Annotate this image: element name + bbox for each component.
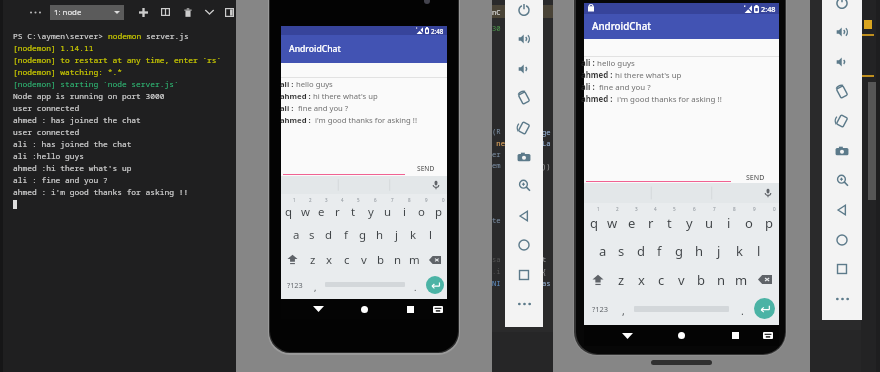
button[interactable]: Rotate left xyxy=(822,77,862,107)
button[interactable]: 2 xyxy=(603,207,622,236)
button[interactable]: Shift xyxy=(584,265,611,294)
button[interactable]: g xyxy=(354,222,371,247)
button[interactable]: Back xyxy=(822,195,862,225)
button[interactable]: b xyxy=(691,265,711,294)
button[interactable]: Take screenshot xyxy=(505,142,543,171)
button[interactable]: . xyxy=(409,272,422,297)
button[interactable]: f xyxy=(337,222,354,247)
button[interactable]: Enter xyxy=(426,276,444,294)
button[interactable]: Take screenshot xyxy=(822,136,862,166)
button[interactable]: Toggle side panel xyxy=(223,4,236,20)
button[interactable]: Backspace xyxy=(751,265,779,294)
button[interactable]: Volume down xyxy=(505,54,543,83)
button[interactable]: Volume down xyxy=(822,47,862,77)
button[interactable]: 3 xyxy=(622,207,641,236)
button[interactable]: Rotate right xyxy=(505,113,543,142)
button[interactable]: d xyxy=(320,222,337,247)
button[interactable]: m xyxy=(406,247,423,272)
button[interactable]: v xyxy=(355,247,372,272)
button[interactable]: f xyxy=(650,236,669,265)
button[interactable]: m xyxy=(731,265,751,294)
button[interactable]: SEND xyxy=(414,162,438,175)
button[interactable]: Backspace xyxy=(423,247,447,272)
button[interactable]: 1 xyxy=(281,198,297,223)
button[interactable]: Switch keyboard xyxy=(757,325,779,346)
button[interactable]: ?123 xyxy=(584,294,616,323)
button[interactable]: s xyxy=(304,222,320,247)
button[interactable]: AndroidChat xyxy=(281,35,447,63)
button[interactable]: Split terminal xyxy=(157,4,174,20)
button[interactable]: 8 xyxy=(719,207,739,236)
button[interactable]: Power xyxy=(505,0,543,24)
button[interactable]: Home xyxy=(505,230,543,259)
button[interactable]: Power xyxy=(822,0,862,18)
button[interactable]: Home xyxy=(822,225,862,255)
button[interactable]: 7 xyxy=(699,207,719,236)
button[interactable]: Rotate left xyxy=(505,83,543,112)
button[interactable]: Kill terminal xyxy=(179,4,196,20)
button[interactable]: ?123 xyxy=(281,272,309,297)
button[interactable]: g xyxy=(669,236,689,265)
button[interactable]: SEND xyxy=(743,171,768,183)
button[interactable]: 2 xyxy=(297,198,313,223)
button[interactable]: Back xyxy=(505,201,543,230)
button[interactable]: l xyxy=(749,236,769,265)
button[interactable]: More xyxy=(822,284,862,314)
button[interactable]: , xyxy=(616,294,631,323)
button[interactable]: Overview xyxy=(505,260,543,289)
button[interactable]: 8 xyxy=(396,198,413,223)
button[interactable]: l xyxy=(422,222,439,247)
button[interactable]: Voice input xyxy=(430,179,442,191)
button[interactable]: Enter xyxy=(754,298,775,319)
button[interactable]: Overview xyxy=(822,254,862,284)
button[interactable]: Rotate right xyxy=(822,106,862,136)
button[interactable]: a xyxy=(593,236,612,265)
button[interactable]: 1 xyxy=(584,207,603,236)
button[interactable]: n xyxy=(711,265,731,294)
button[interactable]: Recent apps xyxy=(399,299,421,319)
button[interactable]: a xyxy=(288,222,304,247)
button[interactable]: k xyxy=(729,236,749,265)
button[interactable]: , xyxy=(309,272,322,297)
button[interactable]: c xyxy=(651,265,671,294)
button[interactable]: 1: node xyxy=(50,5,124,20)
button[interactable]: Shift xyxy=(281,247,304,272)
button[interactable]: 6 xyxy=(679,207,699,236)
button[interactable]: . xyxy=(734,294,750,323)
button[interactable]: 4 xyxy=(641,207,660,236)
button[interactable]: 4 xyxy=(329,198,345,223)
button[interactable]: Space xyxy=(322,272,409,297)
button[interactable]: x xyxy=(631,265,651,294)
button[interactable]: z xyxy=(304,247,321,272)
button[interactable]: Home xyxy=(670,325,692,346)
button[interactable]: k xyxy=(405,222,422,247)
button[interactable]: j xyxy=(388,222,405,247)
button[interactable]: c xyxy=(338,247,355,272)
button[interactable]: Volume up xyxy=(822,17,862,47)
button[interactable]: Volume up xyxy=(505,24,543,53)
button[interactable]: 6 xyxy=(362,198,379,223)
button[interactable]: Home xyxy=(353,299,375,319)
button[interactable]: n xyxy=(389,247,406,272)
button[interactable]: x xyxy=(321,247,338,272)
button[interactable]: Collapse panel xyxy=(201,4,218,20)
button[interactable]: Space xyxy=(631,294,734,323)
button[interactable]: 9 xyxy=(413,198,430,223)
button[interactable]: Zoom in xyxy=(505,171,543,200)
button[interactable]: New terminal xyxy=(135,4,152,20)
button[interactable]: 0 xyxy=(430,198,447,223)
button[interactable]: 7 xyxy=(379,198,396,223)
button[interactable]: s xyxy=(612,236,631,265)
button[interactable]: AndroidChat xyxy=(584,14,779,39)
button[interactable]: Voice input xyxy=(762,187,774,199)
button[interactable]: z xyxy=(611,265,631,294)
button[interactable]: b xyxy=(372,247,389,272)
button[interactable]: More xyxy=(505,289,543,318)
button[interactable]: Switch keyboard xyxy=(427,299,449,319)
button[interactable]: Back xyxy=(616,325,638,346)
button[interactable]: 0 xyxy=(759,207,779,236)
button[interactable]: h xyxy=(371,222,388,247)
button[interactable]: 3 xyxy=(313,198,329,223)
button[interactable]: 9 xyxy=(739,207,759,236)
button[interactable]: 5 xyxy=(345,198,362,223)
